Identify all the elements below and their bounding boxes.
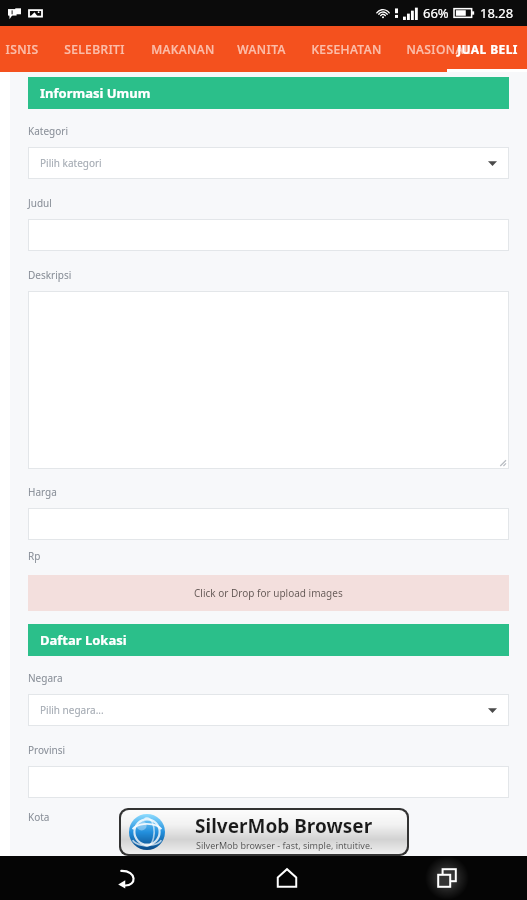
- staticText: KESEHATAN: [311, 41, 382, 57]
- button[interactable]: [28, 766, 509, 798]
- staticText: Kota: [28, 810, 50, 824]
- button[interactable]: Daftar Lokasi: [28, 624, 509, 656]
- staticText: SELEBRITI: [64, 41, 125, 57]
- staticText: Click or Drop for upload images: [194, 586, 343, 600]
- staticText: ISNIS: [5, 41, 39, 57]
- staticText: Harga: [28, 485, 57, 499]
- staticText: Pilih kategori: [40, 156, 102, 170]
- button[interactable]: JUAL BELI: [447, 26, 527, 72]
- button[interactable]: ISNIS: [0, 26, 48, 72]
- staticText: Rp: [28, 549, 41, 563]
- button[interactable]: Back: [83, 856, 171, 900]
- staticText: NASIONAL: [406, 41, 471, 57]
- button[interactable]: Pilih kategori: [28, 147, 509, 179]
- button[interactable]: [28, 508, 509, 540]
- staticText: Judul: [28, 196, 52, 210]
- staticText: 66%: [423, 4, 449, 22]
- button[interactable]: Pilih negara...: [28, 694, 509, 726]
- button[interactable]: [28, 291, 509, 469]
- staticText: JUAL BELI: [457, 41, 518, 57]
- staticText: 18.28: [480, 4, 514, 22]
- staticText: SilverMob browser - fast, simple, intuit…: [196, 839, 373, 851]
- staticText: MAKANAN: [151, 41, 215, 57]
- staticText: SilverMob Browser: [195, 813, 373, 839]
- button[interactable]: Recent apps: [403, 856, 491, 900]
- button[interactable]: MAKANAN: [140, 26, 226, 72]
- button[interactable]: Click or Drop for upload images: [28, 575, 509, 611]
- button[interactable]: WANITA: [226, 26, 296, 72]
- staticText: Informasi Umum: [40, 84, 151, 102]
- button[interactable]: KESEHATAN: [296, 26, 396, 72]
- button[interactable]: Informasi Umum: [28, 77, 509, 109]
- staticText: Daftar Lokasi: [40, 631, 127, 649]
- staticText: Provinsi: [28, 743, 66, 757]
- staticText: Deskripsi: [28, 268, 72, 282]
- staticText: Kategori: [28, 124, 68, 138]
- button[interactable]: SELEBRITI: [48, 26, 140, 72]
- staticText: Pilih negara...: [40, 703, 104, 717]
- button[interactable]: [28, 219, 509, 251]
- button[interactable]: SilverMob Browser: [121, 810, 407, 854]
- button[interactable]: Home: [243, 856, 331, 900]
- staticText: WANITA: [237, 41, 286, 57]
- button[interactable]: NASIONAL: [396, 26, 480, 72]
- staticText: Negara: [28, 671, 63, 685]
